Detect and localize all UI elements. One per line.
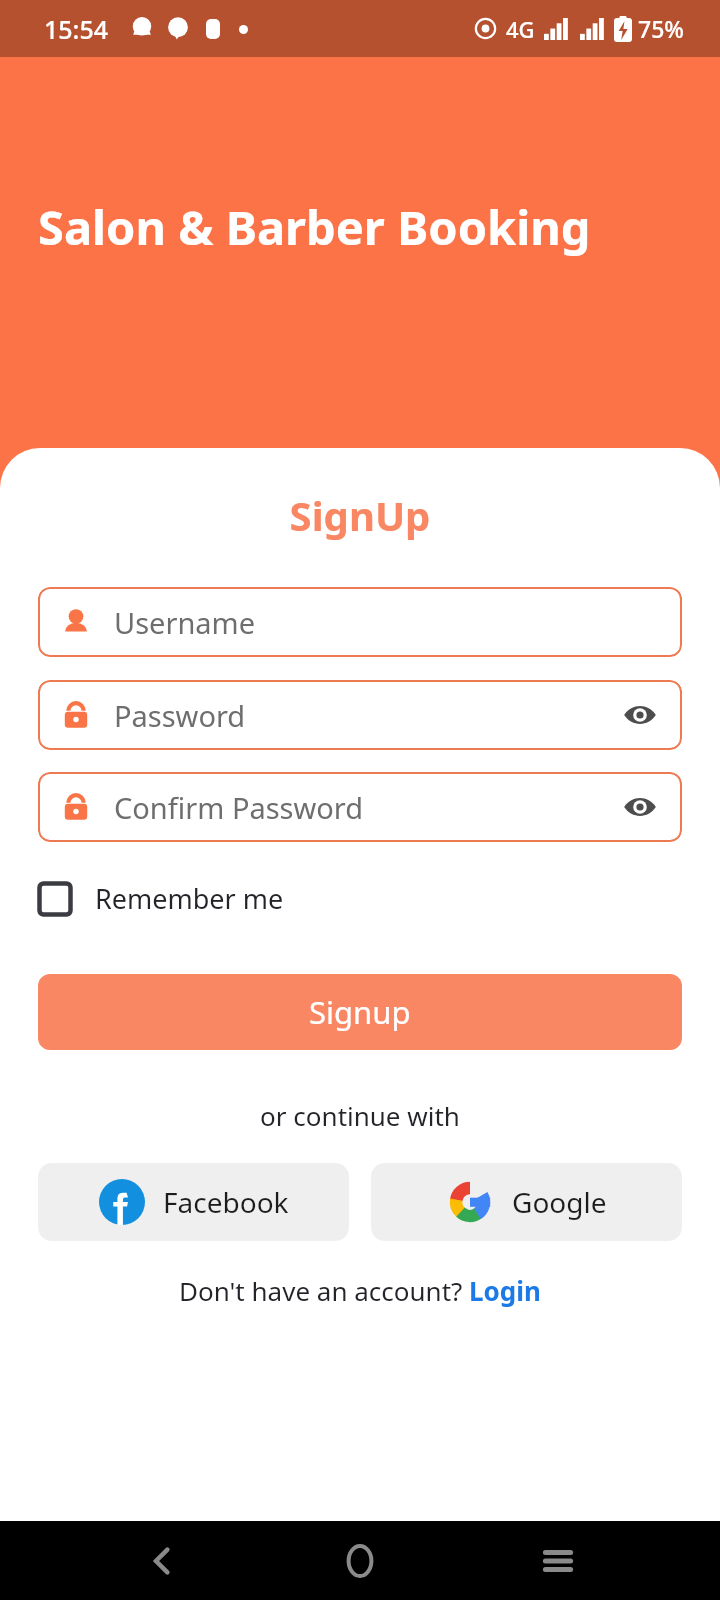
staticText: 15:54 bbox=[44, 12, 109, 46]
staticText: Username bbox=[114, 603, 256, 642]
staticText: Facebook bbox=[163, 1183, 289, 1221]
button[interactable]: Back bbox=[126, 1525, 198, 1597]
staticText: 4G bbox=[506, 14, 535, 44]
button[interactable]: Google bbox=[371, 1163, 682, 1241]
button[interactable]: Show password bbox=[620, 787, 660, 827]
button[interactable]: Show password bbox=[620, 695, 660, 735]
staticText: Signup bbox=[309, 991, 411, 1033]
staticText: Google bbox=[512, 1183, 607, 1221]
button[interactable]: Username bbox=[38, 587, 682, 657]
button[interactable]: Recent apps bbox=[522, 1525, 594, 1597]
button[interactable]: Facebook bbox=[38, 1163, 349, 1241]
staticText: SignUp bbox=[0, 488, 720, 542]
button[interactable]: Confirm Password bbox=[38, 772, 682, 842]
staticText: Salon & Barber Booking bbox=[38, 195, 591, 259]
staticText: or continue with bbox=[0, 1098, 720, 1133]
staticText: Remember me bbox=[95, 880, 284, 917]
button[interactable]: Password bbox=[38, 680, 682, 750]
button[interactable]: Don't have an account? Login bbox=[179, 1273, 541, 1308]
button[interactable]: Signup bbox=[38, 974, 682, 1050]
button[interactable]: Remember me bbox=[38, 880, 284, 917]
staticText: Confirm Password bbox=[114, 788, 364, 827]
staticText: Don't have an account? Login bbox=[179, 1273, 541, 1308]
button[interactable]: Home bbox=[324, 1525, 396, 1597]
staticText: 75% bbox=[638, 13, 684, 44]
staticText: Password bbox=[114, 696, 246, 735]
